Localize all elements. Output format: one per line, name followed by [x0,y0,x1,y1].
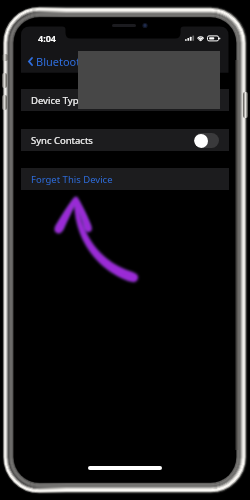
staticText: 4:04 [38,32,56,44]
staticText: Forget This Device [31,173,113,186]
button[interactable]: Forget This Device [21,168,229,190]
button[interactable]: Sync Contacts toggle [194,133,219,148]
button[interactable]: Bluetooth [25,53,91,69]
staticText: Bluetooth [36,54,88,69]
button[interactable]: Device Type [21,89,229,111]
button[interactable]: Sync Contacts [21,129,229,151]
staticText: Device Type [31,94,84,107]
staticText: Sync Contacts [31,134,93,147]
